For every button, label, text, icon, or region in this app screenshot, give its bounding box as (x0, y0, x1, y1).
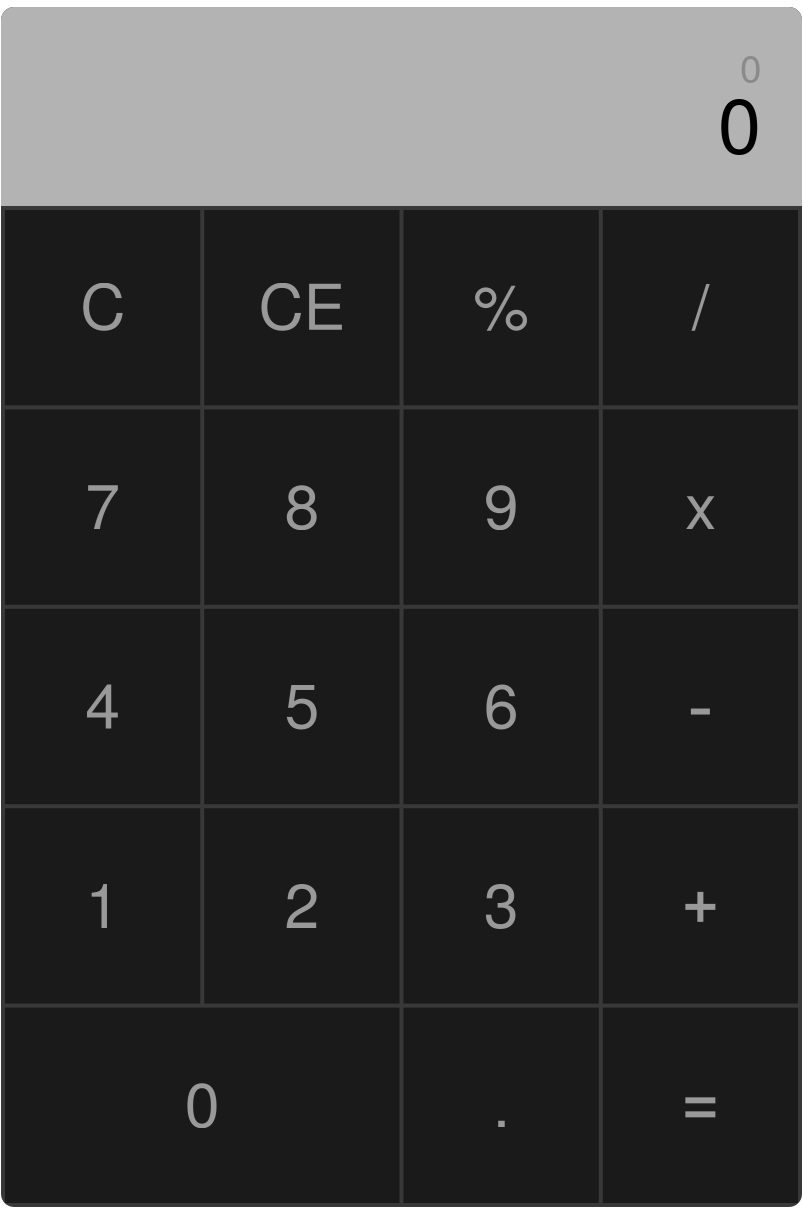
button[interactable]: equals (603, 1008, 798, 1203)
button[interactable]: 6 (403, 609, 599, 804)
button[interactable]: % (403, 210, 599, 405)
staticText: / (692, 258, 709, 347)
staticText: x (685, 457, 716, 547)
staticText: 6 (484, 657, 519, 746)
button[interactable]: 5 (204, 609, 399, 804)
staticText: 0 (185, 1055, 220, 1145)
staticText: 3 (484, 856, 519, 946)
staticText: 8 (284, 457, 319, 547)
button[interactable]: 7 (5, 409, 200, 605)
staticText: C (80, 258, 125, 347)
button[interactable]: 1 (5, 808, 200, 1004)
staticText: 9 (484, 457, 519, 547)
button[interactable]: 2 (204, 808, 399, 1004)
button[interactable]: C (5, 210, 200, 405)
button[interactable]: 8 (204, 409, 399, 605)
button[interactable]: 9 (403, 409, 599, 605)
staticText: 5 (284, 657, 319, 746)
staticText: % (473, 258, 529, 347)
button[interactable]: CE (204, 210, 399, 405)
button[interactable]: plus (603, 808, 798, 1004)
staticText: 7 (85, 457, 120, 547)
staticText: 0 (718, 65, 761, 176)
staticText: CE (258, 258, 345, 347)
button[interactable]: 3 (403, 808, 599, 1004)
staticText: 4 (85, 657, 120, 746)
button[interactable]: divide (603, 210, 798, 405)
button[interactable]: 0 (5, 1008, 399, 1203)
button[interactable]: multiply (603, 409, 798, 605)
staticText: 2 (284, 856, 319, 946)
button[interactable]: minus (603, 609, 798, 804)
button[interactable]: . (403, 1008, 599, 1203)
button[interactable]: 4 (5, 609, 200, 804)
staticText: . (493, 1055, 510, 1145)
staticText: 1 (85, 856, 120, 946)
staticText: 0 (740, 39, 761, 94)
